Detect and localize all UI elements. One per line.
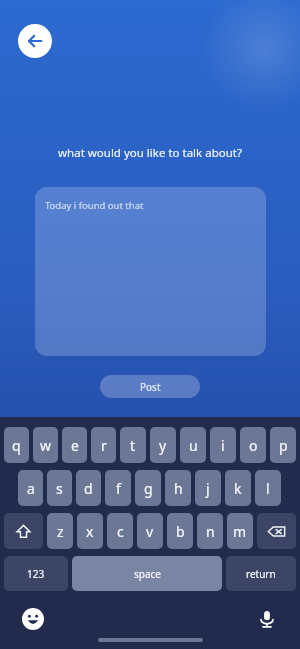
staticText: p xyxy=(279,436,288,455)
button[interactable]: b xyxy=(167,513,193,549)
button[interactable]: Emoji xyxy=(20,606,46,632)
staticText: t xyxy=(130,436,136,455)
staticText: Today i found out that xyxy=(45,199,144,212)
staticText: v xyxy=(146,522,154,541)
button[interactable]: g xyxy=(135,470,161,506)
button[interactable]: c xyxy=(107,513,133,549)
button[interactable]: u xyxy=(180,427,206,463)
staticText: m xyxy=(233,522,247,541)
staticText: l xyxy=(266,479,270,498)
button[interactable]: return xyxy=(226,556,296,591)
button[interactable]: i xyxy=(210,427,236,463)
staticText: q xyxy=(12,436,21,455)
button[interactable]: v xyxy=(137,513,163,549)
button[interactable]: a xyxy=(18,470,43,506)
staticText: y xyxy=(159,436,167,455)
staticText: e xyxy=(71,436,79,455)
button[interactable]: Shift xyxy=(4,513,43,549)
button[interactable]: f xyxy=(105,470,131,506)
button[interactable]: t xyxy=(120,427,146,463)
staticText: x xyxy=(86,522,94,541)
button[interactable]: p xyxy=(270,427,296,463)
button[interactable]: e xyxy=(62,427,87,463)
button[interactable]: Voice input xyxy=(254,606,280,632)
staticText: w xyxy=(40,436,52,455)
staticText: what would you like to talk about? xyxy=(0,145,300,161)
button[interactable]: q xyxy=(4,427,29,463)
staticText: d xyxy=(84,479,93,498)
button[interactable]: Post xyxy=(100,375,200,398)
staticText: 123 xyxy=(27,567,45,581)
button[interactable]: z xyxy=(47,513,73,549)
button[interactable]: n xyxy=(197,513,223,549)
button[interactable]: h xyxy=(165,470,191,506)
button[interactable]: y xyxy=(150,427,176,463)
staticText: i xyxy=(221,436,225,455)
staticText: return xyxy=(246,567,276,581)
button[interactable]: o xyxy=(240,427,266,463)
staticText: s xyxy=(56,479,63,498)
staticText: a xyxy=(27,479,35,498)
staticText: z xyxy=(57,522,64,541)
staticText: h xyxy=(174,479,183,498)
button[interactable]: m xyxy=(227,513,253,549)
button[interactable]: k xyxy=(225,470,251,506)
button[interactable]: Today i found out that xyxy=(35,187,266,356)
staticText: c xyxy=(117,522,124,541)
staticText: f xyxy=(116,479,121,498)
button[interactable]: r xyxy=(91,427,116,463)
staticText: r xyxy=(101,436,107,455)
button[interactable]: Backspace xyxy=(257,513,296,549)
staticText: Post xyxy=(140,380,161,394)
staticText: k xyxy=(234,479,242,498)
button[interactable]: w xyxy=(33,427,58,463)
button[interactable]: j xyxy=(195,470,221,506)
staticText: o xyxy=(249,436,258,455)
staticText: space xyxy=(134,567,161,581)
staticText: b xyxy=(176,522,185,541)
staticText: g xyxy=(144,479,153,498)
staticText: j xyxy=(206,479,210,498)
button[interactable]: d xyxy=(76,470,101,506)
staticText: u xyxy=(189,436,198,455)
button[interactable]: space xyxy=(72,556,222,591)
button[interactable]: l xyxy=(255,470,281,506)
button[interactable]: Back xyxy=(18,24,52,58)
button[interactable]: s xyxy=(47,470,72,506)
button[interactable]: x xyxy=(77,513,103,549)
button[interactable]: 123 xyxy=(4,556,68,591)
staticText: n xyxy=(206,522,215,541)
